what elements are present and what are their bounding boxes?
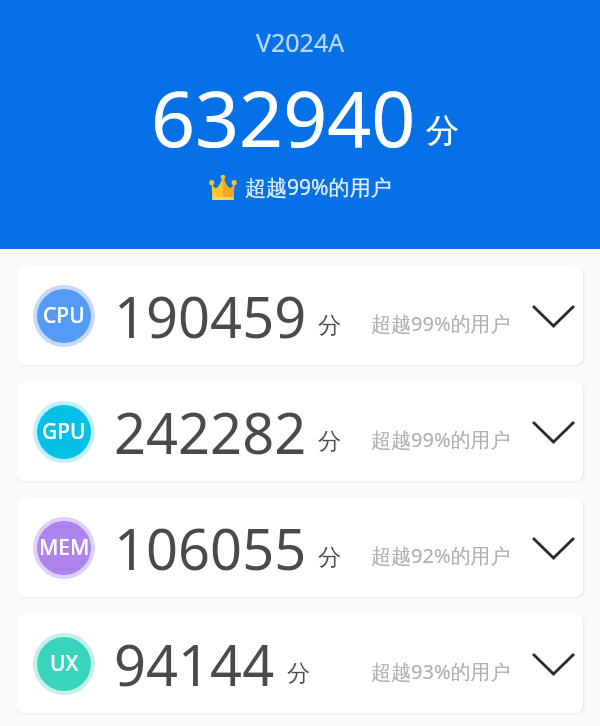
button[interactable]: UX [17,614,583,713]
button[interactable]: CPU [17,266,583,365]
button[interactable]: Expand details [526,405,580,459]
staticText: 超越99%的用户 [371,310,511,337]
staticText: V2024A [256,25,345,59]
staticText: GPU [42,417,86,446]
staticText: 超越93%的用户 [371,658,511,685]
staticText: UX [50,649,79,678]
staticText: 242282 [114,394,307,470]
button[interactable]: MEM [17,498,583,597]
staticText: 94144 [114,626,275,702]
staticText: 分 [318,543,341,572]
staticText: 190459 [114,278,307,354]
staticText: 632940 [151,65,416,170]
button[interactable]: Expand details [526,521,580,575]
staticText: 分 [318,311,341,340]
button[interactable]: Expand details [526,289,580,343]
staticText: 分 [287,659,310,688]
staticText: 106055 [114,510,307,586]
staticText: MEM [39,533,90,562]
button[interactable]: GPU [17,382,583,481]
staticText: 超越92%的用户 [371,542,511,569]
staticText: 超越99%的用户 [245,173,392,202]
staticText: CPU [43,301,85,330]
staticText: 超越99%的用户 [371,426,511,453]
button[interactable]: Expand details [526,637,580,691]
staticText: 分 [426,110,459,152]
staticText: 分 [318,427,341,456]
